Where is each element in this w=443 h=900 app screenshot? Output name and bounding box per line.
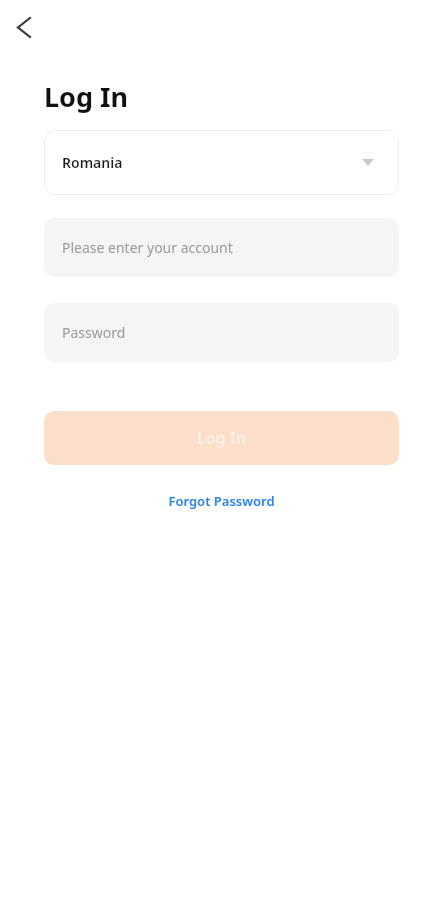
button[interactable]: Forgot Password: [156, 488, 287, 514]
button[interactable]: Password: [44, 303, 399, 362]
staticText: Password: [62, 323, 126, 342]
button[interactable]: Back: [6, 9, 42, 45]
button[interactable]: Romania: [44, 130, 399, 195]
button[interactable]: Log In: [44, 411, 399, 465]
staticText: Forgot Password: [168, 492, 275, 510]
button[interactable]: Please enter your account: [44, 218, 399, 277]
staticText: Please enter your account: [62, 238, 233, 257]
staticText: Log In: [197, 427, 246, 449]
staticText: Romania: [62, 153, 123, 172]
staticText: Log In: [44, 78, 129, 115]
